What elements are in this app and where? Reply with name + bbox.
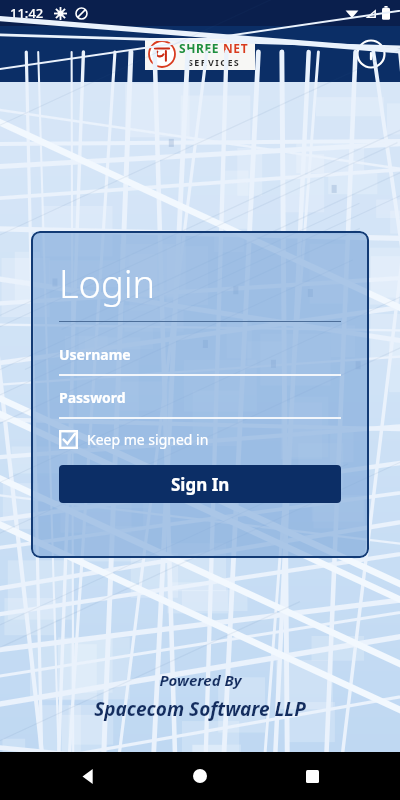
staticText: Keep me signed in [87, 430, 209, 449]
staticText: NET [223, 40, 249, 56]
staticText: Powered By [159, 670, 242, 690]
button[interactable]: Back [64, 752, 112, 800]
staticText: Password [59, 388, 126, 407]
staticText: 11:42 [10, 4, 44, 22]
button[interactable]: Sign In [59, 465, 341, 503]
staticText: Login [59, 257, 156, 309]
staticText: SERVICES [188, 56, 241, 68]
staticText: Username [59, 345, 131, 364]
button[interactable]: Information [354, 37, 388, 71]
staticText: Spacecom Software LLP [94, 696, 306, 722]
staticText: Sign In [171, 473, 230, 496]
button[interactable]: Recents [288, 752, 336, 800]
button[interactable]: Keep me signed in [59, 430, 209, 449]
staticText: SHREE [179, 40, 223, 56]
button[interactable]: Home [176, 752, 224, 800]
